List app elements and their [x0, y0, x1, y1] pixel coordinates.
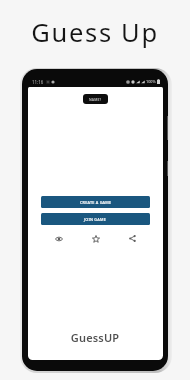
staticText: CREATE A GAME [80, 200, 112, 205]
staticText: 100% [146, 79, 156, 84]
button[interactable]: JOIN GAME [41, 213, 150, 225]
button[interactable]: Share [126, 232, 139, 245]
staticText: JOIN GAME [84, 217, 107, 222]
staticText: GuessUP [0, 330, 190, 345]
button[interactable]: How to play [52, 232, 65, 245]
button[interactable]: Rate [89, 232, 102, 245]
staticText: NAME? [89, 97, 102, 102]
button[interactable]: CREATE A GAME [41, 196, 150, 208]
staticText: Guess Up [0, 15, 190, 50]
button[interactable]: NAME? [83, 94, 108, 104]
staticText: 11:16 [32, 79, 44, 85]
